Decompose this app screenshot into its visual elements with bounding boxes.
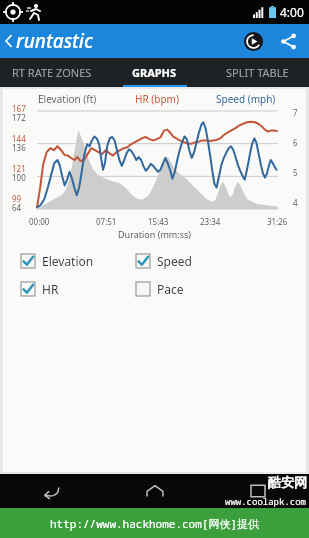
staticText: 6 bbox=[293, 137, 298, 148]
staticText: 121 bbox=[12, 163, 26, 174]
staticText: 4 bbox=[293, 197, 298, 208]
button[interactable]: Speed bbox=[136, 249, 306, 273]
staticText: 4:00 bbox=[280, 4, 304, 20]
staticText: 144 bbox=[12, 133, 26, 144]
staticText: www.coolapk.com bbox=[225, 495, 307, 507]
button[interactable]: Pace bbox=[136, 277, 306, 301]
staticText: http://www.hackhome.com[网侠]提供 bbox=[50, 516, 259, 531]
staticText: 5 bbox=[293, 167, 298, 178]
staticText: Pace bbox=[157, 281, 184, 297]
staticText: 100 bbox=[12, 172, 26, 183]
button[interactable]: SPLIT TABLE bbox=[206, 58, 309, 87]
staticText: 15:43 bbox=[148, 216, 169, 227]
staticText: 167 bbox=[12, 103, 26, 114]
staticText: 23:34 bbox=[200, 216, 221, 227]
button[interactable]: Recents bbox=[206, 474, 309, 508]
staticText: runtastic bbox=[16, 28, 93, 54]
staticText: 99 bbox=[12, 193, 22, 204]
staticText: 00:00 bbox=[29, 216, 50, 227]
button[interactable]: Runtastic app bbox=[238, 26, 268, 56]
staticText: 7 bbox=[293, 107, 298, 118]
staticText: 酷安网 bbox=[268, 474, 307, 490]
staticText: Speed (mph) bbox=[216, 92, 276, 106]
button[interactable]: Elevation bbox=[21, 249, 136, 273]
staticText: Duration (mm:ss) bbox=[118, 228, 191, 240]
button[interactable]: Home bbox=[103, 474, 206, 508]
button[interactable]: runtastic bbox=[0, 25, 99, 57]
button[interactable]: RT RATE ZONES bbox=[0, 58, 103, 87]
staticText: Speed bbox=[157, 253, 192, 269]
button[interactable]: Back bbox=[0, 474, 103, 508]
staticText: Elevation (ft) bbox=[38, 92, 97, 106]
staticText: 31:26 bbox=[267, 216, 288, 227]
button[interactable]: Share bbox=[273, 26, 303, 56]
staticText: 64 bbox=[12, 202, 22, 213]
staticText: GRAPHS bbox=[132, 65, 177, 80]
staticText: HR bbox=[42, 281, 59, 297]
staticText: RT RATE ZONES bbox=[12, 65, 92, 80]
staticText: 136 bbox=[12, 142, 26, 153]
button[interactable]: HR bbox=[21, 277, 136, 301]
staticText: HR (bpm) bbox=[135, 92, 179, 106]
staticText: Elevation bbox=[42, 253, 94, 269]
button[interactable]: GRAPHS bbox=[103, 58, 206, 87]
staticText: SPLIT TABLE bbox=[226, 65, 289, 80]
staticText: 172 bbox=[12, 112, 26, 123]
staticText: 07:51 bbox=[96, 216, 117, 227]
